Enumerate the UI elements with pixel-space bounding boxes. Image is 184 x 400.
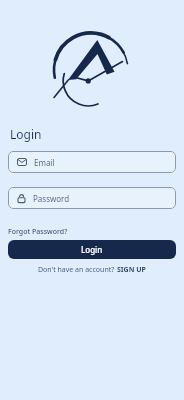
button[interactable]: Password <box>8 187 176 209</box>
staticText: Don't have an account? <box>38 265 117 275</box>
staticText: Login <box>81 244 103 255</box>
button[interactable]: Login <box>8 240 176 259</box>
button[interactable]: SIGN UP <box>117 265 146 275</box>
staticText: Email <box>34 157 55 168</box>
staticText: Login <box>10 126 42 142</box>
button[interactable]: Forgot Password? <box>8 227 68 237</box>
button[interactable]: Email <box>8 151 176 173</box>
staticText: Password <box>33 193 70 204</box>
